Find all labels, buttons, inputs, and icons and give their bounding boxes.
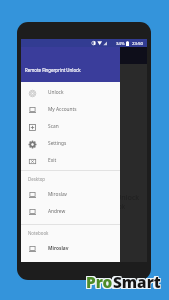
staticText: Andrew xyxy=(48,208,66,215)
staticText: Scan xyxy=(48,123,59,130)
staticText: Settings xyxy=(48,140,67,147)
button[interactable]: My Accounts xyxy=(21,101,120,118)
staticText: Exit xyxy=(48,157,57,164)
staticText: ProSmart xyxy=(86,273,161,294)
staticText: Pro xyxy=(86,272,113,293)
button[interactable]: Unlock xyxy=(116,192,151,202)
staticText: ProSmart xyxy=(85,272,160,293)
staticText: Smart xyxy=(113,272,161,293)
staticText: Miroslav xyxy=(48,245,69,252)
staticText: ok xyxy=(118,202,126,210)
staticText: Unlock xyxy=(48,89,64,96)
button[interactable]: Andrew xyxy=(21,203,120,220)
button[interactable]: Exit xyxy=(21,152,120,169)
staticText: Miroslav xyxy=(48,191,68,198)
button[interactable]: Miroslav xyxy=(21,186,120,203)
staticText: ProSmart xyxy=(87,273,162,294)
button[interactable]: Settings xyxy=(21,135,120,152)
staticText: Unlock xyxy=(116,192,140,202)
staticText: Remote Fingerprint Unlock xyxy=(25,67,81,73)
button[interactable]: Miroslav xyxy=(21,240,120,257)
button[interactable]: Scan xyxy=(21,118,120,135)
staticText: ProSmart xyxy=(87,271,162,292)
staticText: Desktop xyxy=(28,176,46,182)
staticText: ProSmart xyxy=(85,273,160,294)
staticText: 23:50 xyxy=(132,40,143,46)
staticText: Notebook xyxy=(28,230,49,236)
staticText: ProSmart xyxy=(86,271,161,292)
button[interactable]: Unlock xyxy=(21,84,120,101)
staticText: 34% xyxy=(116,40,125,46)
staticText: ProSmart xyxy=(85,271,160,292)
staticText: My Accounts xyxy=(48,106,77,113)
staticText: ProSmart xyxy=(87,272,162,293)
